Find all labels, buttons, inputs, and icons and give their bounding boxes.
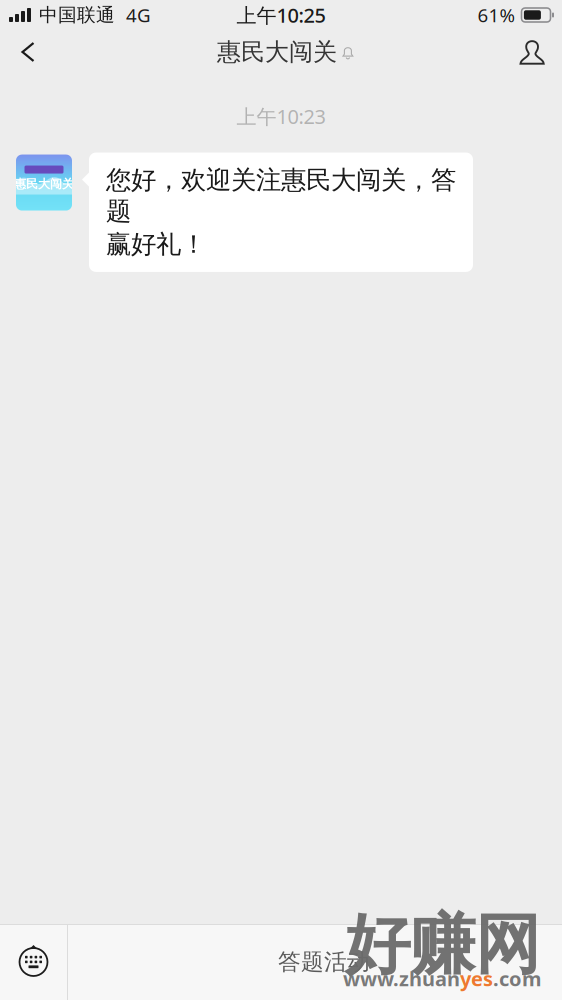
button[interactable]: Keyboard bbox=[0, 924, 67, 1000]
staticText: yes bbox=[460, 965, 493, 992]
staticText: 4G bbox=[126, 3, 151, 27]
button[interactable]: Back bbox=[4, 30, 52, 74]
staticText: 上午10:25 bbox=[236, 2, 325, 28]
staticText: 您好，欢迎关注惠民大闯关，答题 bbox=[106, 165, 456, 227]
staticText: 惠民大闯关 bbox=[14, 177, 74, 191]
staticText: 赢好礼！ bbox=[106, 229, 206, 260]
staticText: .com bbox=[493, 965, 542, 992]
staticText: 好赚网 bbox=[345, 905, 540, 985]
staticText: 中国联通 bbox=[39, 3, 115, 26]
button[interactable]: 答题活动 bbox=[68, 924, 562, 1000]
staticText: www.zhuan bbox=[343, 965, 460, 992]
staticText: 答题活动 bbox=[278, 948, 370, 976]
button[interactable]: Contact info bbox=[506, 30, 558, 74]
staticText: 61% bbox=[477, 3, 515, 27]
staticText: 上午10:23 bbox=[236, 103, 325, 130]
staticText: 惠民大闯关 bbox=[217, 37, 337, 67]
